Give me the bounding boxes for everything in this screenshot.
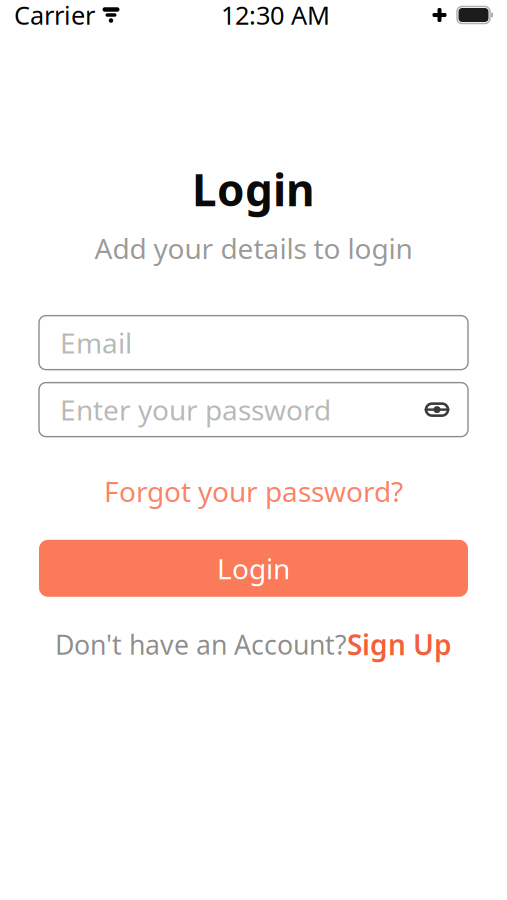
staticText: Carrier: [14, 0, 95, 32]
staticText: Enter your password: [60, 391, 331, 428]
button[interactable]: Forgot your password?: [96, 469, 411, 514]
staticText: 12:30 AM: [221, 0, 330, 32]
staticText: Don't have an Account?: [55, 627, 347, 662]
staticText: Login: [192, 160, 315, 218]
staticText: Sign Up: [347, 626, 452, 663]
staticText: Forgot your password?: [104, 473, 403, 510]
staticText: Email: [60, 324, 132, 361]
staticText: Add your details to login: [94, 229, 412, 267]
staticText: Login: [217, 550, 290, 587]
button[interactable]: Show password: [416, 389, 458, 431]
button[interactable]: Login: [39, 540, 468, 597]
button[interactable]: Sign Up: [347, 626, 452, 663]
